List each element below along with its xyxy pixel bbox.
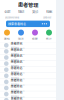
button[interactable]: 随访 [14, 9, 28, 14]
staticText: 最近随访 12-01 [11, 58, 25, 62]
staticText: 患者姓名 [11, 84, 23, 88]
button[interactable]: 建档 [0, 30, 14, 40]
staticText: 患者姓名 [11, 96, 23, 100]
staticText: 全部 [4, 9, 10, 14]
button[interactable]: 患者姓名 [0, 42, 56, 48]
staticText: 最近随访 12-01 [11, 89, 25, 92]
button[interactable]: 患者姓名 [0, 67, 56, 73]
staticText: 患者姓名 [11, 47, 23, 52]
button[interactable]: 搜索患者姓名 [6, 21, 50, 27]
button[interactable]: 患者姓名 [0, 61, 56, 67]
button[interactable]: 患者姓名 [0, 79, 56, 85]
staticText: 患者管理 [18, 1, 38, 8]
staticText: 最近随访 12-01 [11, 52, 25, 56]
staticText: 患者姓名 [11, 41, 23, 46]
button[interactable]: 患者姓名 [0, 85, 56, 91]
staticText: 档案 [46, 9, 52, 14]
staticText: 最近随访 12-01 [11, 95, 25, 98]
button[interactable]: 患者姓名 [0, 91, 56, 97]
staticText: 最近随访 12-01 [11, 46, 25, 49]
staticText: 患者姓名 [11, 53, 23, 58]
staticText: 最近随访 12-01 [11, 83, 25, 86]
button[interactable]: 统计 [42, 30, 56, 40]
staticText: 患者姓名 [11, 65, 23, 70]
staticText: 患者姓名 [11, 78, 23, 82]
staticText: 最近随访 12-01 [11, 64, 25, 68]
staticText: 提醒 [32, 37, 38, 40]
button[interactable]: 档案 [42, 9, 56, 14]
staticText: 统计 [46, 37, 52, 40]
button[interactable]: 患者姓名 [0, 73, 56, 79]
staticText: 患者姓名 [11, 59, 23, 64]
button[interactable]: 患者姓名 [0, 55, 56, 61]
button[interactable]: 患者姓名 [0, 97, 56, 100]
staticText: 最近联系的患者 [5, 16, 19, 19]
staticText: 最近随访 12-01 [11, 76, 25, 80]
button[interactable]: 复诊 [28, 9, 42, 14]
staticText: 建档 [4, 37, 10, 40]
staticText: 患者姓名 [11, 90, 23, 94]
staticText: 搜索患者姓名 [8, 21, 26, 26]
button[interactable]: 患者姓名 [0, 48, 56, 55]
staticText: 复诊 [32, 9, 38, 14]
staticText: 随访 [18, 37, 24, 40]
staticText: 患者姓名 [11, 72, 23, 76]
button[interactable]: 全部 [0, 9, 14, 14]
staticText: 查看全部 [43, 16, 51, 19]
button[interactable]: 提醒 [28, 30, 42, 40]
staticText: 随访 [18, 9, 24, 14]
button[interactable]: 随访 [14, 30, 28, 40]
staticText: 最近随访 12-01 [11, 70, 25, 74]
